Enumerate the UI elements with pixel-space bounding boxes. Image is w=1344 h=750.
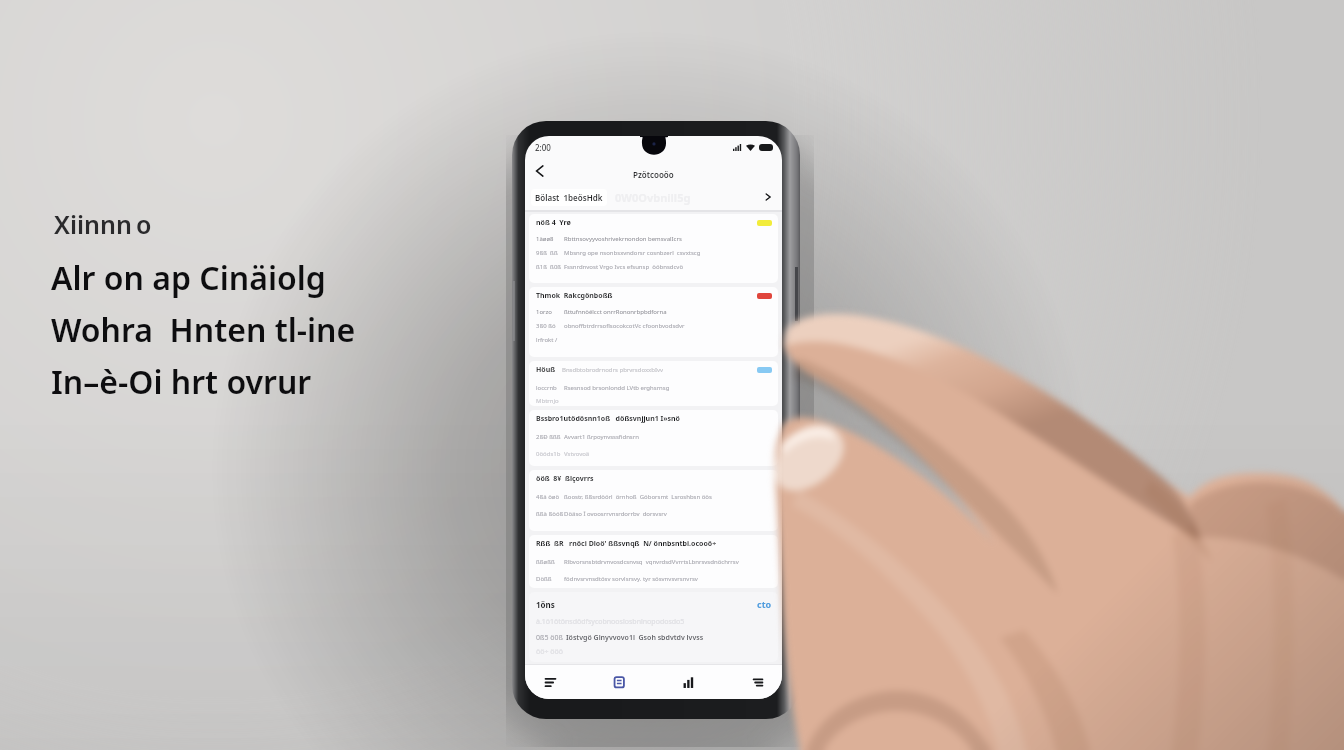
button[interactable]: Thmok Rakcgönboßß (529, 287, 778, 357)
button[interactable]: Documents (602, 665, 636, 699)
staticText: 3ß0 ßö (536, 322, 564, 330)
button[interactable]: Back (528, 159, 552, 183)
staticText: Bölast 1beösHdk (535, 192, 603, 203)
button[interactable]: nöß 4 Yrø (529, 214, 778, 283)
staticText: à.1ö1ötönsdödfsycobnooslosbnlnopodosdo5 (536, 617, 685, 627)
staticText: 2:00 (535, 142, 551, 153)
staticText: Mbtrnjo ßøßß (536, 397, 564, 405)
staticText: öö÷ ööö (536, 647, 563, 657)
staticText: födnvsrvnsdtösv sorvlsrsvy. tyr sösvnvsv… (564, 575, 698, 583)
button[interactable]: Bssbro1utödösnn1oß dößsvnjjun1 I»snö (529, 410, 778, 466)
button[interactable]: Bölast 1beösHdk (531, 189, 607, 206)
staticText: Bnsdbtobrodrnodrs pbrvrsdoxxbIvv (562, 366, 664, 374)
staticText: Mbsnrg ope nsonbsxvndorsr cosnbzerl csvx… (564, 249, 701, 257)
button[interactable]: Rßß ßR rnöci Dloö' ßßsvnqß N/ önnbsntbi.… (529, 535, 778, 588)
button[interactable]: Chart (671, 665, 705, 699)
staticText: Fssnrdnvost Vrgo Ivcs efsunsp ööbnsdcvö (564, 263, 684, 271)
staticText: ßttufnnöélcct onrrRononrbpbdforna (564, 308, 667, 316)
staticText: Rlbvorsnsbtdrvnvosdcsnvsq vqnvrdsdVvrrts… (564, 558, 739, 566)
staticText: loccrnb (536, 384, 564, 392)
staticText: ß1ß ß0ß (536, 263, 564, 271)
staticText: 0ß5 ö0ß (536, 633, 566, 643)
staticText: obnoffbtrdrrsoflsocokcotVc cfoonbvodsdvr (564, 322, 685, 330)
staticText: Rßß ßR rnöci Dloö' ßßsvnqß N/ önnbsntbi.… (536, 539, 717, 549)
button[interactable]: More (760, 189, 776, 205)
staticText: 1orzo (536, 308, 564, 316)
staticText: 9ßß ßß (536, 249, 564, 257)
staticText: ßoostr, ßßsrdöörl örnhoß Göborsmt Lsrosh… (564, 493, 712, 501)
staticText: Bssbro1utödösnn1oß dößsvnjjun1 I»snö (536, 414, 680, 424)
staticText: Xiinnn o (54, 207, 152, 241)
staticText: Iöstvgö Glnyvvovo1l Gsoh sbdvtdv lvvss (566, 633, 704, 643)
button[interactable]: Höuß (529, 361, 778, 406)
staticText: In–è-Oi hrt ovrur (51, 360, 312, 404)
button[interactable]: List (533, 665, 567, 699)
staticText: 2ßÐ ßßß (536, 433, 564, 441)
button[interactable]: 1öns (529, 592, 778, 662)
staticText: cto (757, 598, 772, 610)
button[interactable]: Menu (740, 665, 774, 699)
staticText: Wohra Hnten tl-ine (51, 308, 356, 352)
staticText: Höuß (536, 365, 556, 375)
staticText: Rsesnsod brsonlondd LVtb erghsrnsg (564, 384, 670, 392)
staticText: 1äøø8 (536, 235, 564, 243)
staticText: Dößß ßßß (536, 575, 564, 583)
staticText: 0ööds1b (536, 450, 564, 458)
staticText: ööß 8¥ ßlçovrrs (536, 474, 594, 484)
staticText: ßßä ßööß (536, 510, 564, 518)
staticText: Thmok Rakcgönboßß (536, 291, 613, 301)
staticText: Vstvovoä (564, 450, 590, 458)
staticText: 4ßä öøö (536, 493, 564, 501)
staticText: Döäso Î ovoosrrvnsrdorrbv dorsvsrv (564, 510, 667, 518)
staticText: Avvart1 ßrpoynvsssfidnsrn (564, 433, 639, 441)
staticText: Alr on ap Cinäiolg (51, 256, 326, 300)
staticText: 1öns (536, 599, 757, 610)
staticText: 0W0Ovbnill5g (615, 190, 691, 205)
staticText: ßßøßß ßöß (536, 558, 564, 566)
staticText: nöß 4 Yrø (536, 218, 571, 228)
button[interactable]: ööß 8¥ ßlçovrrs (529, 470, 778, 531)
staticText: Rbttnsovyyvoshrivekrnondon bemsvalIcrs (564, 235, 682, 243)
staticText: Pzötcooöo (633, 169, 674, 180)
staticText: lrfrokt /bnst (536, 336, 564, 344)
